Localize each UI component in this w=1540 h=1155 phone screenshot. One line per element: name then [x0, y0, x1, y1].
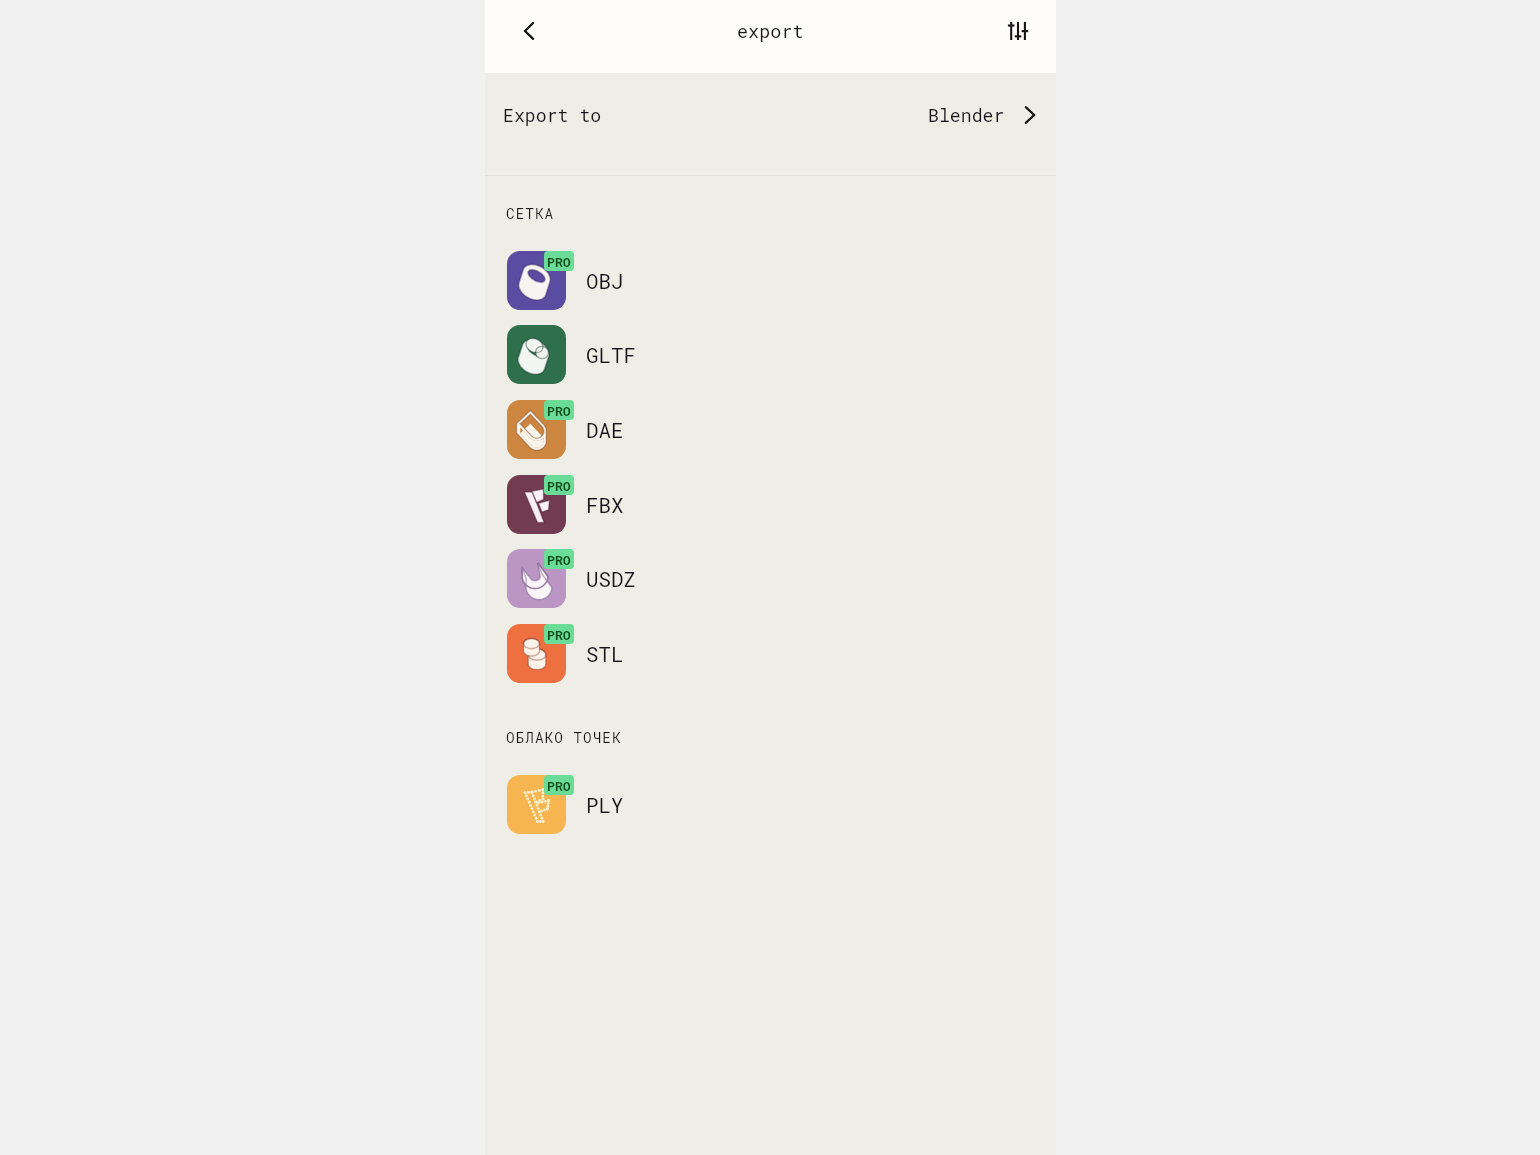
staticText: FBX — [586, 491, 624, 518]
staticText: PLY — [586, 791, 624, 818]
staticText: PRO — [547, 253, 571, 270]
staticText: Export to — [503, 103, 602, 127]
button[interactable]: Export to — [485, 73, 1056, 175]
staticText: OBJ — [586, 267, 624, 294]
staticText: PRO — [547, 551, 571, 568]
staticText: СЕТКА — [506, 204, 555, 223]
staticText: Blender — [928, 103, 1005, 127]
staticText: export — [737, 19, 804, 43]
staticText: USDZ — [586, 565, 636, 592]
button[interactable]: GLTF — [485, 317, 1056, 392]
button[interactable]: PRO — [485, 392, 1056, 467]
staticText: PRO — [547, 477, 571, 494]
staticText: ОБЛАКО ТОЧЕК — [506, 728, 622, 747]
staticText: PRO — [547, 402, 571, 419]
button[interactable]: PRO — [485, 243, 1056, 318]
button[interactable]: Back — [507, 9, 551, 53]
button[interactable]: PRO — [485, 467, 1056, 542]
staticText: GLTF — [586, 341, 636, 368]
staticText: PRO — [547, 626, 571, 643]
button[interactable]: PRO — [485, 541, 1056, 616]
button[interactable]: PRO — [485, 616, 1056, 691]
button[interactable]: Settings — [996, 9, 1040, 53]
staticText: STL — [586, 640, 624, 667]
staticText: PRO — [547, 777, 571, 794]
staticText: DAE — [586, 416, 624, 443]
button[interactable]: PRO — [485, 767, 1056, 842]
